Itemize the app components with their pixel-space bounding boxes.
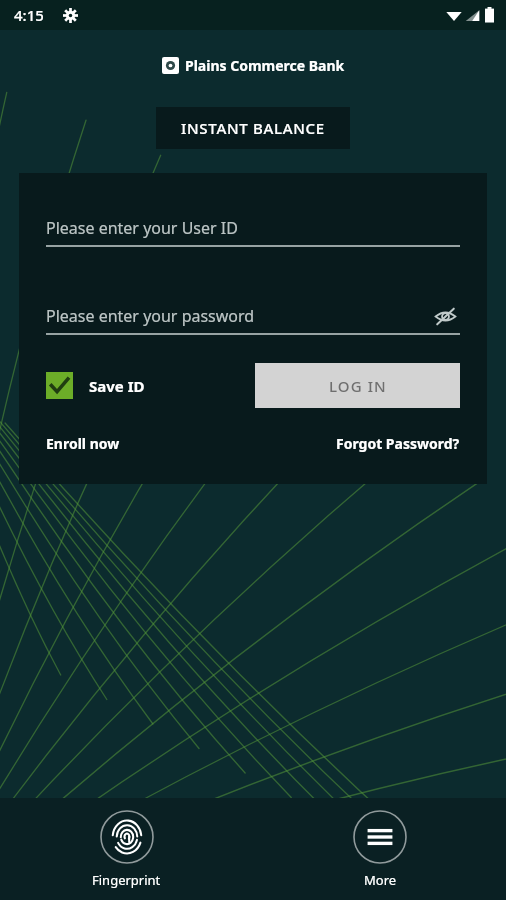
button[interactable]: Forgot Password? bbox=[336, 434, 460, 453]
button[interactable]: Fingerprint bbox=[89, 807, 164, 892]
staticText: More bbox=[364, 871, 397, 889]
staticText: Plains Commerce Bank bbox=[185, 56, 345, 75]
staticText: Forgot Password? bbox=[336, 434, 460, 453]
staticText: Please enter your User ID bbox=[46, 217, 238, 239]
button[interactable]: INSTANT BALANCE bbox=[156, 107, 350, 149]
staticText: Fingerprint bbox=[92, 871, 161, 889]
staticText: Save ID bbox=[89, 376, 145, 396]
button[interactable]: Save ID bbox=[46, 372, 145, 399]
staticText: Enroll now bbox=[46, 434, 120, 453]
button[interactable]: Please enter your password bbox=[46, 299, 460, 333]
button[interactable]: More bbox=[350, 807, 410, 892]
button[interactable]: Please enter your User ID bbox=[46, 211, 460, 245]
staticText: LOG IN bbox=[329, 376, 387, 396]
staticText: 4:15 bbox=[14, 5, 44, 25]
button[interactable]: LOG IN bbox=[255, 363, 460, 408]
staticText: Please enter your password bbox=[46, 305, 255, 327]
staticText: INSTANT BALANCE bbox=[181, 118, 325, 138]
button[interactable]: Show password bbox=[430, 301, 460, 331]
button[interactable]: Enroll now bbox=[46, 434, 120, 453]
